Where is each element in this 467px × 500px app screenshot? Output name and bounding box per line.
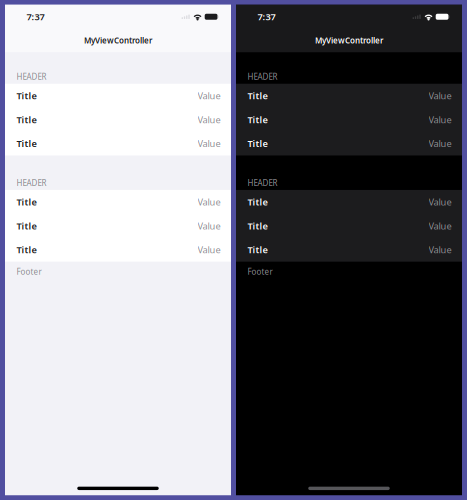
staticText: HEADER: [16, 71, 46, 82]
staticText: Title: [16, 113, 36, 126]
button[interactable]: Title: [5, 238, 231, 262]
button[interactable]: Title: [5, 190, 231, 214]
staticText: Title: [16, 196, 36, 208]
staticText: Value: [428, 220, 451, 232]
staticText: Value: [197, 243, 220, 256]
staticText: Title: [247, 113, 267, 126]
staticText: Value: [197, 113, 220, 126]
button[interactable]: Title: [236, 238, 462, 262]
button[interactable]: Title: [5, 84, 231, 108]
staticText: Footer: [16, 266, 41, 277]
button[interactable]: Title: [236, 108, 462, 132]
staticText: Title: [247, 243, 267, 256]
staticText: 7:37: [26, 11, 44, 23]
button[interactable]: Title: [236, 132, 462, 155]
staticText: Title: [247, 89, 267, 102]
staticText: HEADER: [247, 177, 277, 188]
staticText: Value: [197, 137, 220, 150]
button[interactable]: Title: [236, 84, 462, 108]
staticText: Title: [16, 137, 36, 150]
staticText: Value: [428, 137, 451, 150]
staticText: Title: [16, 89, 36, 102]
button[interactable]: Title: [5, 214, 231, 238]
staticText: HEADER: [16, 177, 46, 188]
staticText: Value: [428, 89, 451, 102]
staticText: Value: [428, 113, 451, 126]
button[interactable]: Title: [236, 214, 462, 238]
staticText: Footer: [247, 266, 272, 277]
staticText: Value: [197, 196, 220, 208]
staticText: Title: [247, 137, 267, 150]
staticText: Value: [428, 196, 451, 208]
button[interactable]: Title: [236, 190, 462, 214]
staticText: Title: [16, 220, 36, 232]
staticText: HEADER: [247, 71, 277, 82]
staticText: Title: [247, 196, 267, 208]
staticText: 7:37: [257, 11, 275, 23]
staticText: Title: [247, 220, 267, 232]
staticText: Title: [16, 243, 36, 256]
staticText: Value: [197, 89, 220, 102]
button[interactable]: Title: [5, 108, 231, 132]
button[interactable]: Title: [5, 132, 231, 155]
staticText: Value: [428, 243, 451, 256]
staticText: MyViewController: [84, 35, 152, 46]
staticText: MyViewController: [315, 35, 383, 46]
staticText: Value: [197, 220, 220, 232]
